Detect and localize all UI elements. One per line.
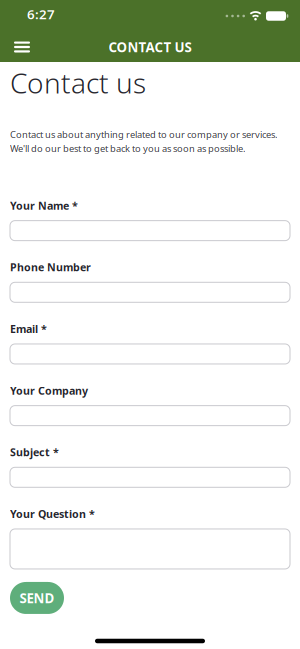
staticText: 6:27: [27, 5, 55, 23]
staticText: Your Company: [10, 383, 88, 398]
staticText: Contact us: [10, 64, 146, 101]
staticText: CONTACT US: [108, 38, 191, 56]
staticText: Phone Number: [10, 260, 91, 274]
staticText: Contact us about anything related to our…: [10, 128, 278, 154]
button[interactable]: Menu: [0, 35, 30, 58]
staticText: Your Question *: [10, 507, 95, 521]
staticText: Subject *: [10, 445, 59, 459]
button[interactable]: SEND: [10, 582, 64, 614]
staticText: Email *: [10, 322, 47, 336]
staticText: SEND: [19, 589, 54, 607]
staticText: Your Name *: [10, 198, 78, 213]
